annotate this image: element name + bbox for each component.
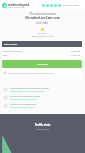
staticText: Secure and fast domain transfer xyxy=(10,95,41,98)
staticText: domain marketplace xyxy=(8,6,25,8)
button[interactable]: Secure and fast domain transfer xyxy=(3,95,82,100)
button[interactable]: Make offer xyxy=(2,60,82,68)
button[interactable]: Guaranteed by Buyer Protection Program xyxy=(3,87,82,92)
staticText: The domain name xyxy=(29,12,56,16)
staticText: Traffic stats xyxy=(35,123,51,127)
staticText: UltraslimLiveCam.com xyxy=(25,16,60,20)
other: Undeveloped logo xyxy=(2,3,7,8)
button[interactable]: Buyer protection program included with t… xyxy=(3,71,82,75)
staticText: Guaranteed by Buyer Protection Program xyxy=(10,87,49,90)
button[interactable]: Make an offer xyxy=(2,41,82,47)
staticText: Make an offer xyxy=(4,43,18,46)
staticText: is for sale! xyxy=(36,21,49,25)
button[interactable]: Undeveloped logo xyxy=(0,0,85,10)
staticText: Total xyxy=(3,54,8,56)
staticText: Visits per week xyxy=(36,128,50,131)
staticText: Get your money back if anything goes wro… xyxy=(10,90,44,92)
staticText: Manage and no hidden fees xyxy=(10,103,37,106)
staticText: Buy safely xyxy=(38,32,47,34)
staticText: Read our reviews xyxy=(63,4,80,7)
staticText: Assisted by our expert transfer team xyxy=(10,98,38,100)
staticText: Make offer xyxy=(37,63,48,66)
staticText: Free transfer assistance included xyxy=(10,106,35,108)
button[interactable]: Manage and no hidden fees xyxy=(3,103,82,108)
button[interactable]: Customer reviews xyxy=(42,4,80,7)
staticText: $1,495 USD xyxy=(71,50,81,52)
staticText: with buyer protection included xyxy=(32,35,54,37)
staticText: undeveloped xyxy=(8,2,30,6)
staticText: $1,495 USD xyxy=(71,54,81,56)
staticText: Buyer protection program included with t… xyxy=(8,72,54,74)
staticText: UltraslimLiveCam.com xyxy=(3,50,22,52)
